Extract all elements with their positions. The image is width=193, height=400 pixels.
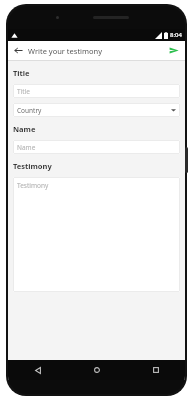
button[interactable]: Send [163,41,185,60]
staticText: Write your testimony [28,46,163,56]
staticText: Title [17,87,176,96]
staticText: Title [13,68,30,78]
button[interactable]: Testimony [13,177,180,292]
button[interactable]: Recent apps [126,360,185,380]
button[interactable]: Back [8,41,28,60]
button[interactable]: Country [13,103,180,117]
button[interactable]: Title [13,84,180,98]
staticText: Name [17,143,176,152]
button[interactable]: Home [67,360,126,380]
staticText: Country [17,106,171,115]
staticText: Testimony [13,161,52,171]
staticText: Testimony [17,181,176,190]
button[interactable]: Name [13,140,180,154]
button[interactable]: Back [8,360,67,380]
staticText: 8:04 [170,31,182,39]
staticText: Name [13,124,36,134]
